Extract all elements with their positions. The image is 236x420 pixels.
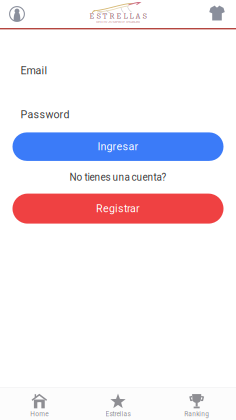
button[interactable]: Ranking: [157, 387, 236, 420]
staticText: Password: [20, 108, 69, 121]
button[interactable]: Store: [203, 0, 233, 28]
staticText: Home: [30, 410, 48, 418]
staticText: Estrellas: [105, 410, 130, 418]
staticText: No tienes una cuenta?: [69, 171, 166, 183]
staticText: Email: [20, 64, 47, 77]
button[interactable]: Ingresar: [12, 132, 223, 161]
button[interactable]: Estrellas: [79, 387, 157, 420]
button[interactable]: Home: [0, 387, 79, 420]
staticText: Ingresar: [97, 140, 138, 153]
staticText: Ranking: [184, 410, 209, 418]
button[interactable]: Registrar: [12, 194, 223, 224]
staticText: Registrar: [96, 202, 140, 215]
staticText: E S T R E L L A S: [89, 12, 146, 20]
button[interactable]: Profile: [3, 0, 31, 28]
staticText: SHOW JUMPING STABLES: [96, 20, 140, 24]
